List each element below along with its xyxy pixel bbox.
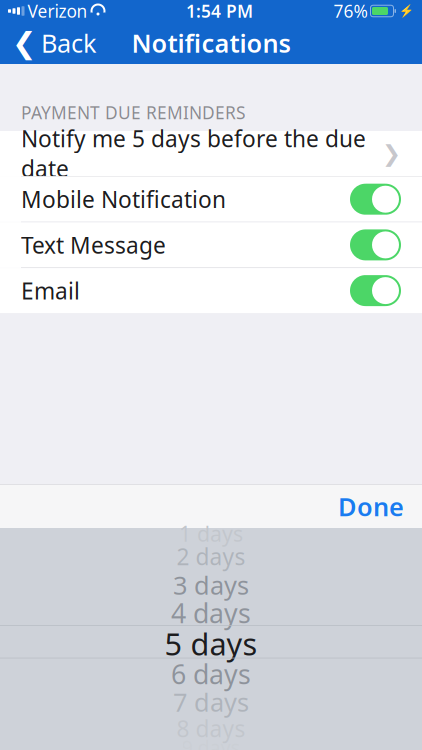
staticText: 2 days (176, 541, 245, 571)
staticText: 76% (333, 0, 367, 22)
button[interactable]: Mobile Notification (0, 177, 422, 222)
button[interactable]: Email (0, 268, 422, 313)
staticText: PAYMENT DUE REMINDERS (21, 101, 246, 124)
staticText: 9 days (181, 734, 240, 750)
staticText: 1:54 PM (186, 0, 253, 22)
staticText: Notifications (131, 26, 290, 60)
staticText: ⚡ (399, 4, 414, 18)
staticText: Text Message (21, 230, 166, 260)
staticText: 1 days (179, 519, 243, 548)
staticText: 4 days (171, 595, 251, 631)
staticText: Notify me 5 days before the due date (21, 123, 366, 184)
staticText: Verizon (27, 0, 87, 22)
staticText: 7 days (173, 685, 249, 719)
button[interactable]: Notify me 5 days before the due date (0, 131, 422, 176)
button[interactable]: Done (320, 485, 422, 528)
button[interactable]: Text Message (0, 222, 422, 267)
staticText: Back (41, 26, 97, 60)
staticText: Done (338, 489, 404, 523)
staticText: 5 days (164, 623, 257, 664)
staticText: ❯ (382, 141, 401, 166)
staticText: Mobile Notification (21, 184, 226, 214)
staticText: 6 days (171, 656, 251, 692)
staticText: Email (21, 275, 80, 306)
staticText: 3 days (173, 568, 249, 602)
staticText: ❮ (12, 26, 37, 60)
button[interactable]: ❮ (0, 22, 109, 64)
staticText: 8 days (176, 713, 245, 743)
